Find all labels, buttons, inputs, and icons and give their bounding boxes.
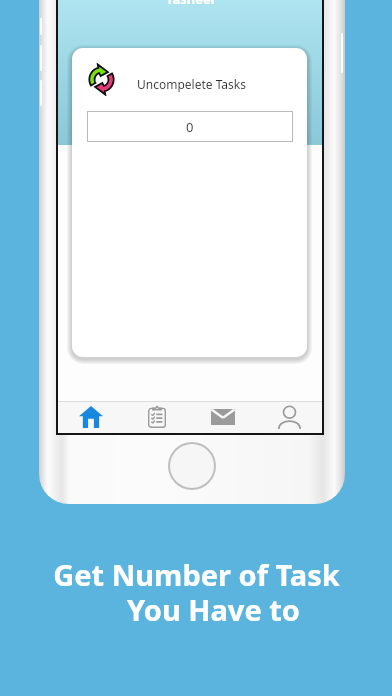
staticText: Tasheel [166,0,215,8]
staticText: You Have to [127,590,300,629]
staticText: Uncompelete Tasks [137,76,247,92]
button[interactable]: Tasks [124,401,190,433]
button[interactable]: Home [58,401,124,433]
button[interactable]: Profile [256,401,322,433]
staticText: 0 [186,118,194,136]
button[interactable]: Messages [190,401,256,433]
staticText: Get Number of Task [53,555,340,594]
